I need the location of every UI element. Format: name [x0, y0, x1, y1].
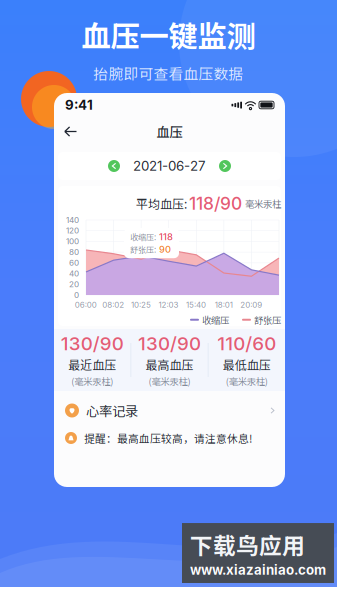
staticText: 血压: [156, 122, 182, 141]
button[interactable]: 心率记录: [54, 396, 285, 425]
staticText: 抬腕即可查看血压数据: [93, 62, 243, 84]
staticText: www.xiazainiao.com: [190, 562, 326, 578]
staticText: 毫米汞柱: [245, 197, 281, 210]
staticText: (毫米汞柱): [226, 374, 268, 388]
staticText: 15:40: [186, 300, 206, 310]
staticText: 舒张压:: [130, 244, 156, 255]
button[interactable]: 后一天: [219, 160, 231, 172]
staticText: 08:02: [102, 300, 124, 310]
staticText: 最近血压: [68, 356, 116, 373]
staticText: 60: [69, 258, 79, 268]
staticText: 2021-06-27: [133, 158, 206, 174]
staticText: 9:41: [65, 97, 93, 113]
staticText: 提醒：最高血压较高，请注意休息!: [84, 430, 252, 446]
staticText: (毫米汞柱): [71, 374, 113, 388]
staticText: 收缩压: [202, 313, 229, 326]
button[interactable]: 前一天: [108, 160, 120, 172]
staticText: 100: [66, 237, 79, 246]
staticText: 06:00: [75, 300, 97, 310]
staticText: 20: [69, 279, 79, 289]
staticText: 130/90: [138, 332, 201, 355]
staticText: (毫米汞柱): [148, 374, 190, 388]
staticText: 18:01: [215, 300, 233, 310]
staticText: 120: [66, 226, 79, 236]
staticText: 110/60: [217, 332, 276, 355]
staticText: 80: [69, 247, 79, 257]
staticText: 90: [159, 244, 171, 255]
staticText: 118: [159, 231, 173, 242]
staticText: 130/90: [61, 332, 124, 355]
staticText: 最低血压: [223, 356, 271, 373]
staticText: 舒张压: [254, 313, 281, 326]
staticText: 10:25: [131, 300, 151, 310]
staticText: 12:03: [158, 300, 178, 310]
staticText: 下载鸟应用: [190, 528, 305, 561]
staticText: 血压一键监测: [81, 13, 255, 55]
staticText: 118/90: [189, 193, 242, 214]
staticText: 心率记录: [86, 401, 138, 420]
staticText: 平均血压:: [136, 195, 187, 212]
staticText: 0: [74, 290, 79, 300]
button[interactable]: 返回: [54, 117, 87, 145]
staticText: 收缩压:: [130, 231, 156, 243]
staticText: 20:09: [240, 300, 262, 310]
staticText: 40: [69, 269, 79, 278]
staticText: 140: [66, 215, 79, 225]
staticText: 最高血压: [145, 356, 193, 373]
